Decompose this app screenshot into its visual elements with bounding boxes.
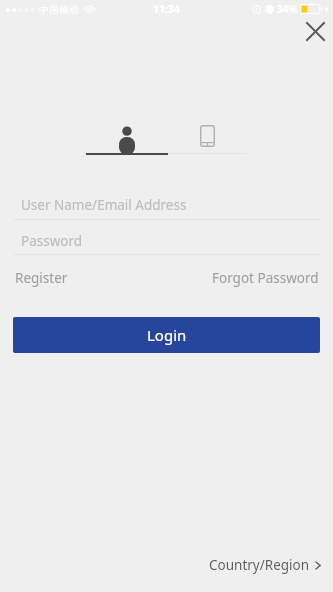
button[interactable]: Login — [13, 317, 320, 353]
staticText: Register — [15, 269, 68, 287]
staticText: Login — [147, 325, 187, 345]
button[interactable]: Password — [14, 227, 320, 254]
button[interactable]: Register — [14, 265, 69, 291]
staticText: Password — [21, 232, 83, 250]
button[interactable]: Phone login — [168, 118, 247, 154]
staticText: 11:34 — [153, 2, 180, 16]
staticText: Forgot Password — [212, 269, 319, 287]
button[interactable]: Close — [296, 12, 333, 50]
staticText: Country/Region — [209, 556, 310, 574]
staticText: User Name/Email Address — [21, 196, 187, 214]
button[interactable]: Account login — [86, 118, 168, 154]
button[interactable]: Country/Region — [207, 552, 323, 578]
staticText: 中国移动 — [39, 3, 79, 16]
staticText: 34% — [277, 2, 298, 16]
button[interactable]: User Name/Email Address — [14, 190, 320, 220]
button[interactable]: Forgot Password — [211, 265, 320, 291]
